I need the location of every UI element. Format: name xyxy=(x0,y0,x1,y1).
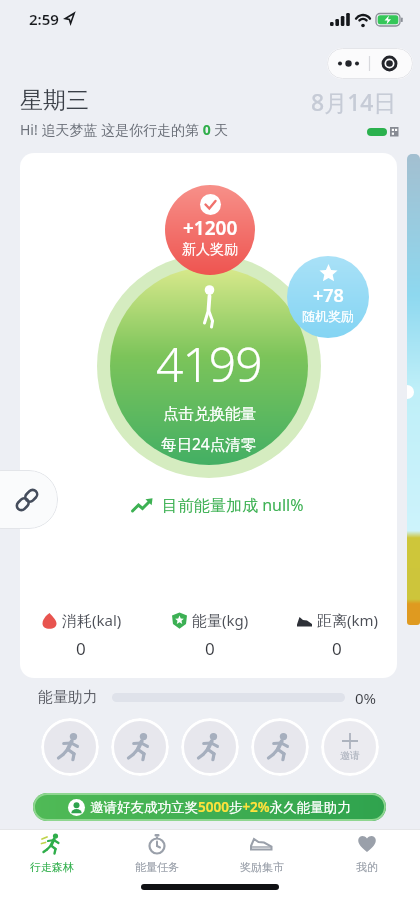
staticText: 距离(km) xyxy=(317,610,379,630)
staticText: 0 xyxy=(205,637,215,660)
staticText: 8月14日 xyxy=(311,86,397,117)
staticText: 目前能量加成 null% xyxy=(162,494,304,516)
staticText: 4199 xyxy=(156,331,262,396)
button[interactable] xyxy=(41,718,99,776)
staticText: 新人奖励 xyxy=(182,241,238,259)
staticText: 能量任务 xyxy=(135,860,179,874)
staticText: 邀请好友成功立奖5000步+2%永久能量助力 xyxy=(90,798,351,816)
button[interactable] xyxy=(327,48,413,79)
button[interactable]: 消耗(kal) xyxy=(21,610,141,660)
staticText: 行走森林 xyxy=(30,860,74,874)
staticText: 星期三 xyxy=(20,86,89,115)
button[interactable] xyxy=(0,470,58,529)
button[interactable]: 我的 xyxy=(322,832,412,876)
button[interactable]: 距离(km) xyxy=(277,610,397,660)
staticText: Hi! 追天梦蓝 这是你行走的第 0 天 xyxy=(20,120,229,139)
button[interactable]: 邀请好友成功立奖5000步+2%永久能量助力 xyxy=(33,793,386,821)
button[interactable] xyxy=(181,718,239,776)
staticText: 点击兑换能量 xyxy=(163,404,256,424)
staticText: 2:59 xyxy=(29,9,59,29)
button[interactable]: 能量(kg) xyxy=(150,610,270,660)
staticText: 随机奖励 xyxy=(302,308,354,324)
staticText: 0% xyxy=(355,688,377,708)
staticText: 0 xyxy=(332,637,342,660)
staticText: +1200 xyxy=(183,215,238,241)
staticText: 每日24点清零 xyxy=(161,433,257,454)
staticText: 能量(kg) xyxy=(192,610,249,630)
staticText: 能量助力 xyxy=(38,688,98,707)
button[interactable]: 邀请 xyxy=(321,718,379,776)
staticText: 消耗(kal) xyxy=(62,610,122,630)
staticText: +78 xyxy=(313,283,344,308)
button[interactable]: 奖励集市 xyxy=(217,832,307,876)
staticText: 邀请 xyxy=(340,749,360,762)
button[interactable] xyxy=(367,128,387,136)
button[interactable] xyxy=(110,267,308,465)
staticText: 我的 xyxy=(356,860,378,874)
button[interactable]: +1200 xyxy=(165,185,255,275)
button[interactable]: 行走森林 xyxy=(7,832,97,876)
button[interactable]: +78 xyxy=(287,256,369,338)
button[interactable] xyxy=(251,718,309,776)
staticText: 奖励集市 xyxy=(240,860,284,874)
button[interactable]: 能量任务 xyxy=(112,832,202,876)
staticText: 0 xyxy=(76,637,86,660)
button[interactable] xyxy=(111,718,169,776)
